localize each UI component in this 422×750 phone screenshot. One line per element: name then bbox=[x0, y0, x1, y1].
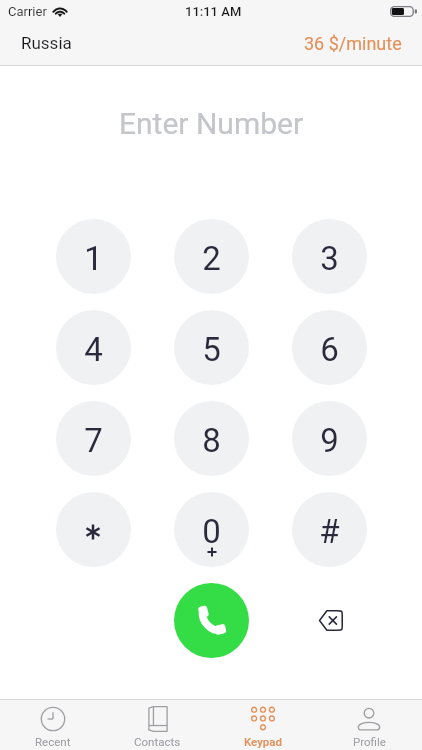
staticText: Keypad bbox=[244, 735, 282, 748]
staticText: # bbox=[319, 512, 340, 551]
button[interactable]: Backspace bbox=[307, 598, 353, 642]
staticText: 8 bbox=[202, 421, 221, 460]
button[interactable]: 2 bbox=[174, 219, 249, 294]
button[interactable]: 9 bbox=[292, 401, 367, 476]
staticText: 7 bbox=[84, 421, 103, 460]
staticText: 2 bbox=[202, 239, 221, 278]
staticText: 0 bbox=[202, 512, 221, 551]
staticText: 11:11 AM bbox=[185, 4, 242, 19]
button[interactable]: 0 bbox=[174, 492, 249, 567]
button[interactable]: 7 bbox=[56, 401, 131, 476]
button[interactable]: Recent bbox=[0, 700, 105, 748]
staticText: 3 bbox=[320, 239, 339, 278]
button[interactable]: # bbox=[292, 492, 367, 567]
staticText: 1 bbox=[84, 239, 103, 278]
button[interactable]: Call bbox=[174, 583, 249, 658]
staticText: Enter Number bbox=[119, 106, 304, 141]
staticText: 4 bbox=[84, 330, 103, 369]
staticText: 9 bbox=[320, 421, 339, 460]
staticText: Contacts bbox=[134, 735, 181, 748]
staticText: 6 bbox=[320, 330, 339, 369]
staticText: Recent bbox=[35, 735, 71, 748]
button[interactable]: 1 bbox=[56, 219, 131, 294]
staticText: Carrier bbox=[8, 4, 47, 19]
button[interactable]: Contacts bbox=[105, 700, 210, 748]
button[interactable]: 6 bbox=[292, 310, 367, 385]
button[interactable]: Keypad bbox=[210, 700, 316, 748]
button[interactable]: 5 bbox=[174, 310, 249, 385]
button[interactable]: Profile bbox=[316, 700, 422, 748]
button[interactable]: 4 bbox=[56, 310, 131, 385]
staticText: 5 bbox=[202, 330, 221, 369]
button[interactable]: 3 bbox=[292, 219, 367, 294]
staticText: Profile bbox=[353, 735, 386, 748]
staticText: 36 $/minute bbox=[304, 33, 402, 54]
button[interactable]: * bbox=[56, 492, 131, 567]
button[interactable]: 8 bbox=[174, 401, 249, 476]
staticText: Russia bbox=[21, 33, 72, 53]
